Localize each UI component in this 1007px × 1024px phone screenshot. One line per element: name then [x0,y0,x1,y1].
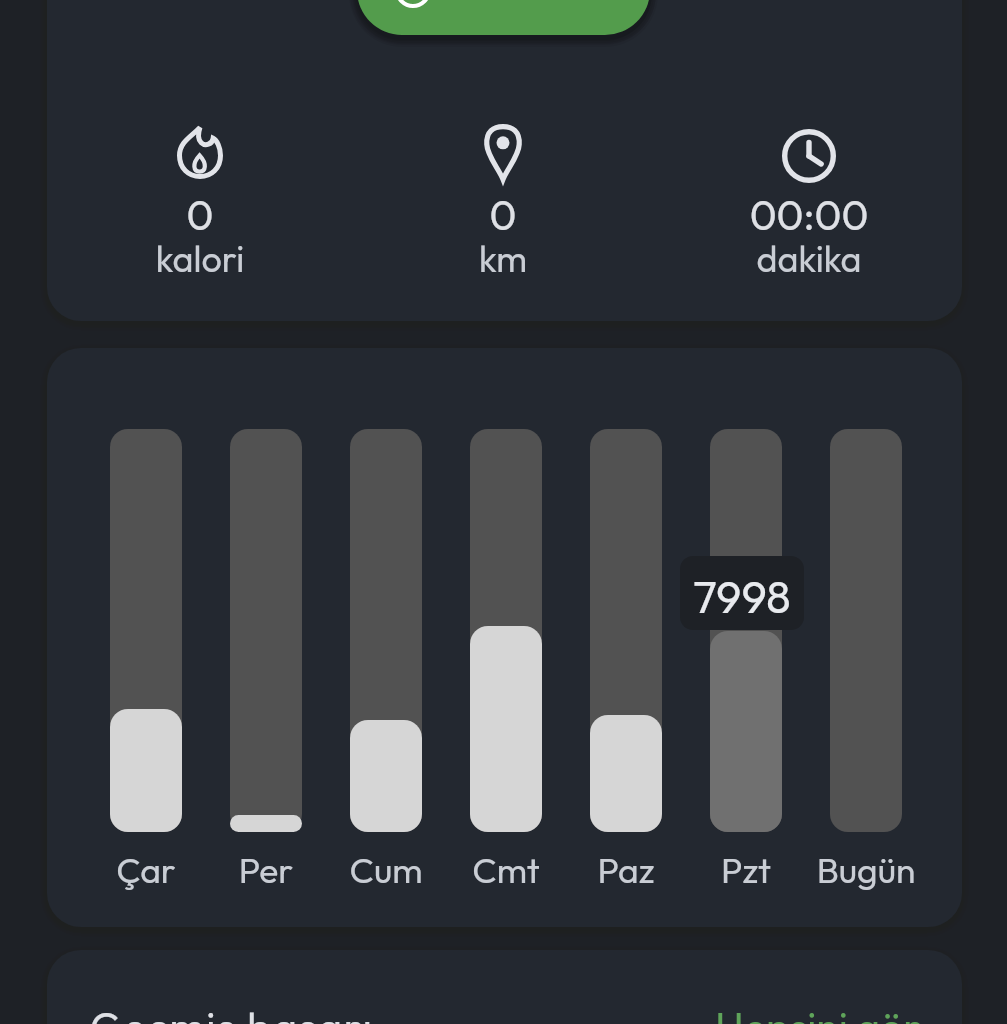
staticText: 0 [0,189,410,241]
button[interactable]: Pzt [710,429,782,832]
staticText: kalori [0,236,410,281]
staticText: Bugün [766,847,966,892]
staticText: Cum [286,847,486,892]
staticText: Çar [46,847,246,892]
button[interactable]: DURDUR [357,0,650,35]
staticText: Geçmiş başarı [90,1001,374,1024]
staticText: Per [166,847,366,892]
staticText: Pzt [646,847,846,892]
staticText: Paz [526,847,726,892]
button[interactable]: Hepsini gör [0,0,206,52]
button[interactable]: Paz [590,429,662,832]
button[interactable]: Bugün [830,429,902,832]
button[interactable]: Per [230,429,302,832]
staticText: 7998 [642,568,842,625]
staticText: Cmt [406,847,606,892]
staticText: dakika [599,236,1007,281]
button[interactable]: Çar [110,429,182,832]
button[interactable]: Cum [350,429,422,832]
staticText: 0 [293,189,713,241]
staticText: 00:00 [599,189,1007,241]
staticText: Hepsini gör [715,1001,921,1024]
button[interactable]: Cmt [470,429,542,832]
staticText: km [293,236,713,281]
